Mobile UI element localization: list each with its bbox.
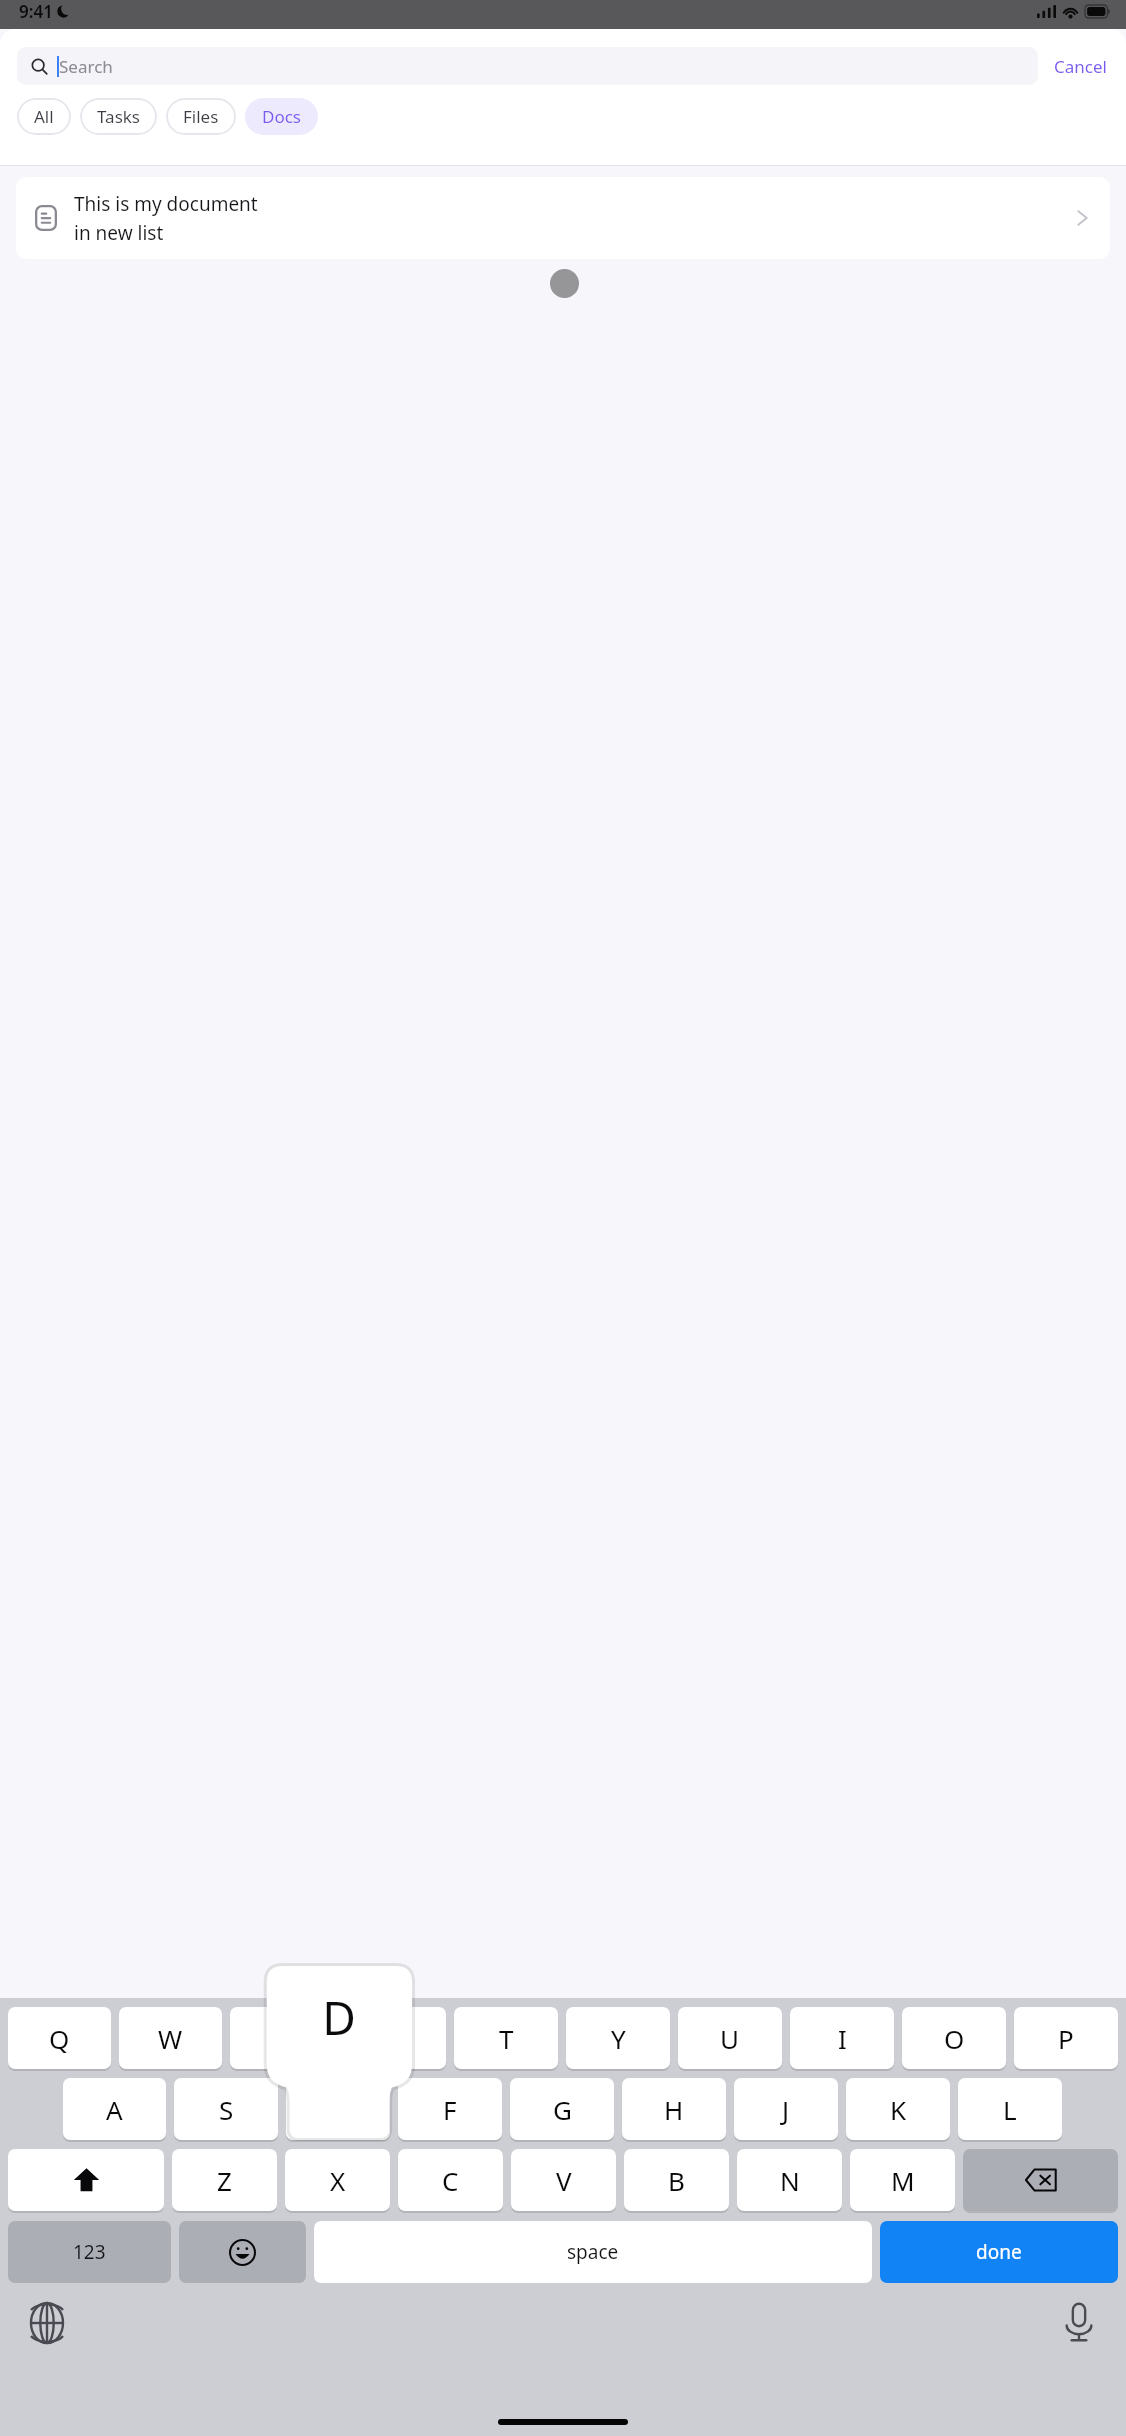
staticText: P xyxy=(1058,2021,1074,2056)
button[interactable]: J xyxy=(734,2078,838,2140)
staticText: F xyxy=(443,2092,457,2127)
button[interactable]: M xyxy=(850,2149,955,2211)
button[interactable]: 123 xyxy=(8,2221,171,2283)
button[interactable]: N xyxy=(737,2149,842,2211)
button[interactable]: Files xyxy=(166,98,236,135)
button[interactable]: Docs xyxy=(245,98,318,135)
button[interactable]: Dictate xyxy=(1057,2301,1101,2345)
button[interactable]: P xyxy=(1014,2007,1118,2069)
staticText: Cancel xyxy=(1054,55,1107,78)
staticText: J xyxy=(782,2092,790,2127)
button[interactable]: H xyxy=(622,2078,726,2140)
staticText: 9:41 xyxy=(19,0,53,23)
staticText: K xyxy=(890,2092,907,2127)
button[interactable]: T xyxy=(454,2007,558,2069)
staticText: 123 xyxy=(73,2239,106,2265)
button[interactable]: Shift xyxy=(8,2149,164,2211)
staticText: O xyxy=(944,2021,965,2056)
button[interactable]: U xyxy=(678,2007,782,2069)
staticText: Tasks xyxy=(97,105,140,128)
staticText: done xyxy=(976,2239,1022,2265)
staticText: C xyxy=(442,2163,459,2198)
button[interactable]: Q xyxy=(8,2007,111,2069)
button[interactable] xyxy=(286,2078,390,2140)
staticText: All xyxy=(34,105,54,128)
button[interactable]: done xyxy=(880,2221,1118,2283)
button[interactable]: Emoji xyxy=(179,2221,306,2283)
staticText: Files xyxy=(183,105,219,128)
button[interactable]: Change keyboard xyxy=(25,2301,69,2345)
staticText: H xyxy=(664,2092,684,2127)
button[interactable]: C xyxy=(398,2149,503,2211)
staticText: Q xyxy=(49,2021,70,2056)
button[interactable]: Cancel xyxy=(1052,49,1109,84)
staticText: B xyxy=(668,2163,685,2198)
button[interactable]: A xyxy=(63,2078,166,2140)
button[interactable]: Profile xyxy=(550,269,579,298)
staticText: Y xyxy=(611,2021,626,2056)
button[interactable]: B xyxy=(624,2149,729,2211)
staticText: V xyxy=(556,2163,572,2198)
staticText: This is my document xyxy=(74,191,258,217)
button[interactable]: R xyxy=(342,2007,446,2069)
button[interactable]: space xyxy=(314,2221,872,2283)
button[interactable]: I xyxy=(790,2007,894,2069)
button[interactable]: Y xyxy=(566,2007,670,2069)
staticText: G xyxy=(553,2092,572,2127)
button[interactable]: Search xyxy=(17,47,1038,85)
button[interactable]: All xyxy=(17,98,71,135)
button[interactable]: F xyxy=(398,2078,502,2140)
button[interactable]: Z xyxy=(172,2149,277,2211)
staticText: A xyxy=(106,2092,123,2127)
button[interactable]: E xyxy=(230,2007,334,2069)
staticText: Docs xyxy=(262,105,301,128)
staticText: M xyxy=(891,2163,915,2198)
staticText: D xyxy=(322,1986,356,2042)
button[interactable]: Backspace xyxy=(963,2149,1118,2211)
staticText: W xyxy=(158,2021,183,2056)
button[interactable]: G xyxy=(510,2078,614,2140)
staticText: N xyxy=(780,2163,800,2198)
button[interactable]: X xyxy=(285,2149,390,2211)
button[interactable]: Tasks xyxy=(80,98,157,135)
button[interactable]: W xyxy=(119,2007,222,2069)
staticText: U xyxy=(720,2021,740,2056)
staticText: T xyxy=(499,2021,514,2056)
staticText: I xyxy=(838,2021,847,2056)
button[interactable]: This is my document xyxy=(16,177,1110,259)
button[interactable]: L xyxy=(958,2078,1062,2140)
button[interactable]: K xyxy=(846,2078,950,2140)
button[interactable]: V xyxy=(511,2149,616,2211)
staticText: S xyxy=(219,2092,234,2127)
staticText: Search xyxy=(59,55,113,78)
button[interactable]: S xyxy=(174,2078,278,2140)
staticText: Z xyxy=(217,2163,232,2198)
staticText: L xyxy=(1003,2092,1017,2127)
staticText: X xyxy=(330,2163,346,2198)
staticText: space xyxy=(567,2239,619,2265)
button[interactable]: O xyxy=(902,2007,1006,2069)
staticText: in new list xyxy=(74,220,164,246)
